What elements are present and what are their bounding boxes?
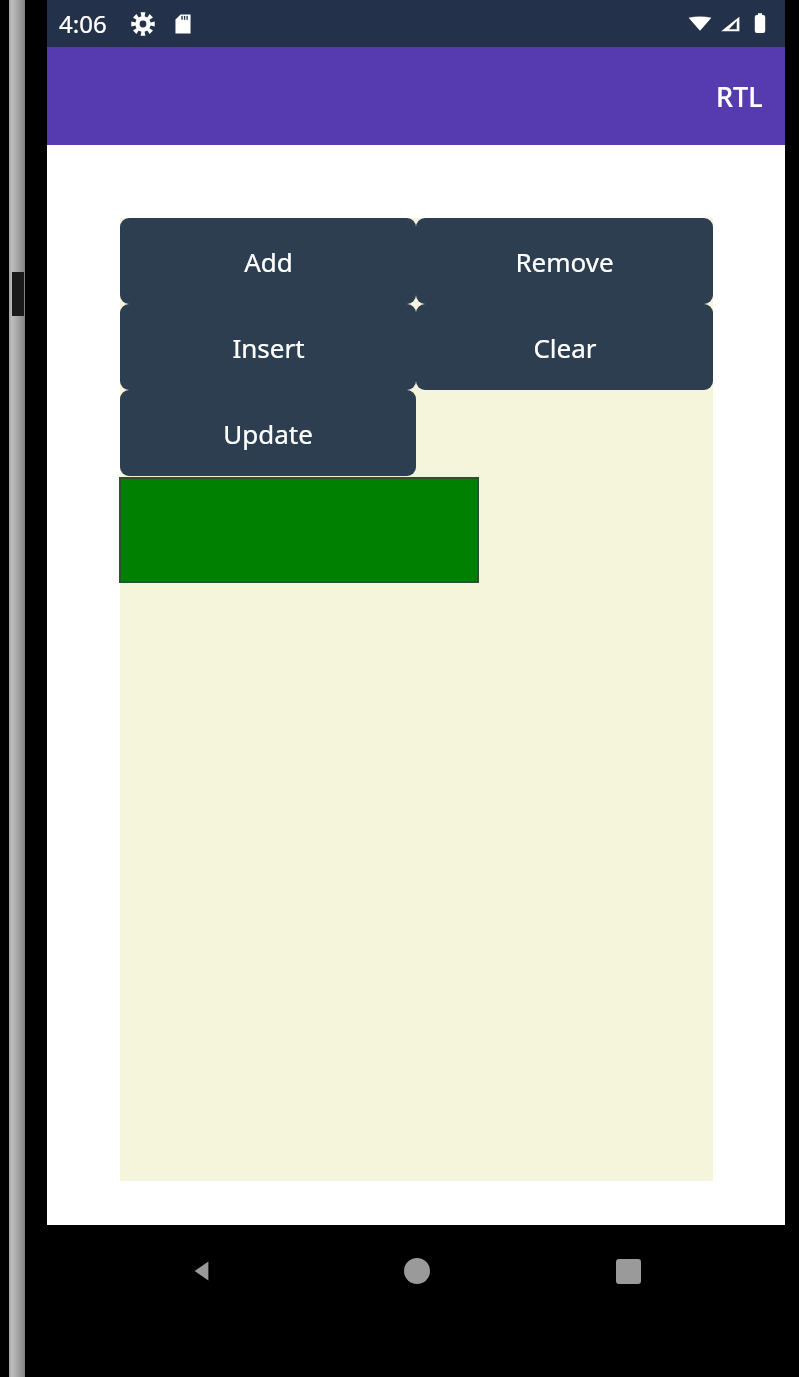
button[interactable]: Insert — [120, 304, 416, 390]
button[interactable]: Home — [393, 1247, 441, 1295]
staticText: Add — [244, 244, 293, 279]
button[interactable]: Back — [179, 1247, 227, 1295]
button[interactable]: Recent apps — [604, 1247, 652, 1295]
button[interactable]: Add — [120, 218, 416, 304]
button[interactable]: Update — [120, 390, 416, 476]
button[interactable]: RTL — [694, 64, 785, 129]
staticText: 4:06 — [59, 7, 107, 40]
button[interactable]: Remove — [416, 218, 713, 304]
staticText: Update — [223, 416, 313, 451]
staticText: Clear — [533, 330, 597, 365]
staticText: Insert — [232, 330, 305, 365]
staticText: RTL — [716, 78, 763, 115]
button[interactable]: Clear — [416, 304, 713, 390]
staticText: Remove — [515, 244, 614, 279]
